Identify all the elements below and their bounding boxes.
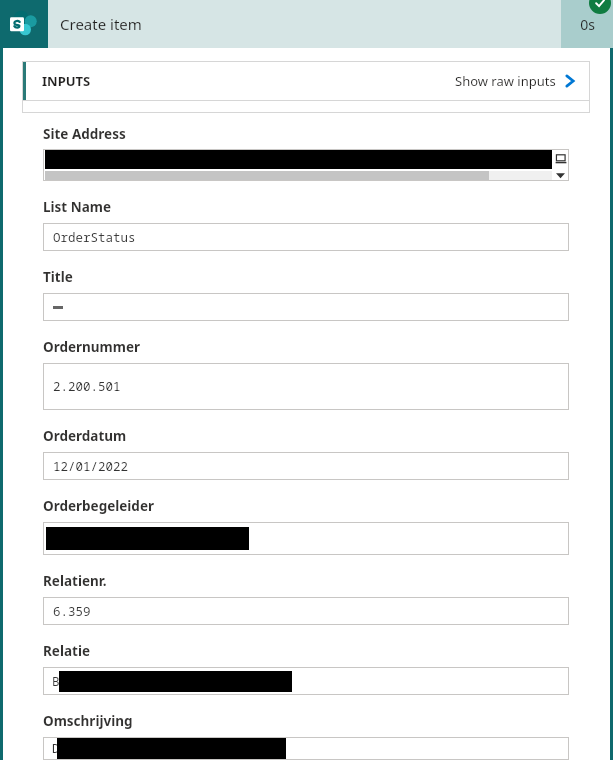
button[interactable]: Show raw inputs <box>455 61 590 100</box>
staticText: Relatienr. <box>43 572 107 590</box>
staticText: OrderStatus <box>53 229 136 246</box>
staticText: Relatie <box>43 642 90 660</box>
staticText: 2.200.501 <box>53 378 121 395</box>
button[interactable]: 6.359 <box>43 597 569 625</box>
staticText: 6.359 <box>53 603 91 620</box>
staticText: Create item <box>60 14 142 34</box>
other: Scroll down <box>552 169 569 181</box>
button[interactable] <box>43 522 569 555</box>
button[interactable]: Open site picker <box>43 149 569 181</box>
staticText: Title <box>43 268 73 286</box>
staticText: INPUTS <box>42 72 91 90</box>
staticText: Orderdatum <box>43 427 127 445</box>
staticText: B <box>52 673 60 690</box>
staticText: 12/01/2022 <box>53 458 129 475</box>
other: Open site picker <box>552 149 569 169</box>
staticText: Orderbegeleider <box>43 497 154 515</box>
button[interactable] <box>43 293 569 321</box>
staticText: Omschrijving <box>43 712 133 730</box>
staticText: Ordernummer <box>43 338 141 356</box>
staticText: Show raw inputs <box>455 72 556 90</box>
button[interactable]: OrderStatus <box>43 223 569 251</box>
other: Succeeded <box>589 0 611 14</box>
button[interactable]: D <box>43 737 569 760</box>
button[interactable]: 12/01/2022 <box>43 452 569 480</box>
button[interactable]: Create item <box>0 0 613 48</box>
button[interactable]: 2.200.501 <box>43 363 569 410</box>
button[interactable]: B <box>43 667 569 695</box>
staticText: D <box>52 740 60 757</box>
staticText: Site Address <box>43 125 126 143</box>
staticText: 0s <box>580 15 595 34</box>
staticText: List Name <box>43 198 112 216</box>
